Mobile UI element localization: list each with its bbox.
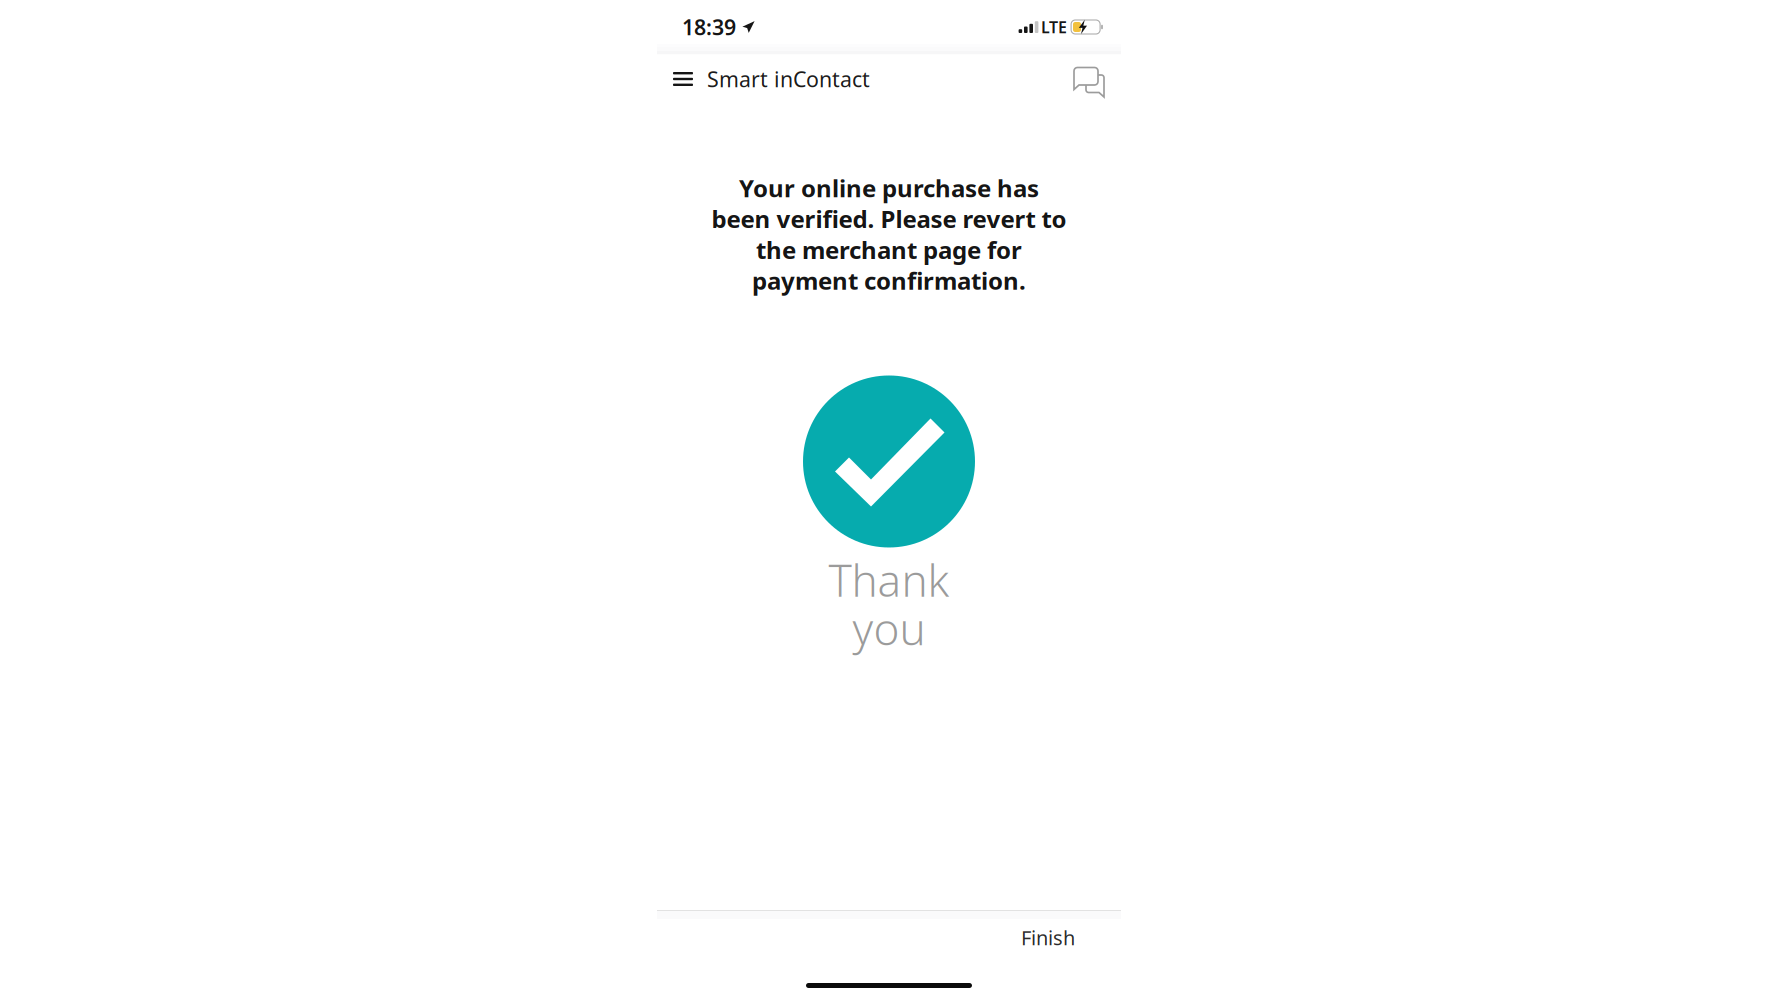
staticText: the merchant page for	[756, 234, 1022, 266]
button[interactable]: Finish	[1005, 920, 1087, 967]
staticText: 18:39	[682, 13, 736, 41]
staticText: Your online purchase has	[739, 172, 1039, 204]
staticText: LTE	[1041, 16, 1067, 38]
staticText: been verified. Please revert to	[711, 203, 1066, 235]
button[interactable]: Messages	[1073, 57, 1121, 108]
staticText: you	[852, 599, 925, 657]
button[interactable]: Menu	[657, 62, 709, 104]
staticText: payment confirmation.	[752, 265, 1026, 296]
button[interactable]: Smart inContact	[709, 57, 872, 109]
staticText: Smart inContact	[707, 65, 870, 93]
staticText: Finish	[1021, 924, 1075, 951]
staticText: Thank	[828, 550, 949, 609]
